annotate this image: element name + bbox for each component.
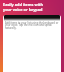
- staticText: Add items to your list using the keyboar…: [5, 21, 59, 30]
- staticText: Easily add items with your voice or keyp…: [3, 2, 43, 12]
